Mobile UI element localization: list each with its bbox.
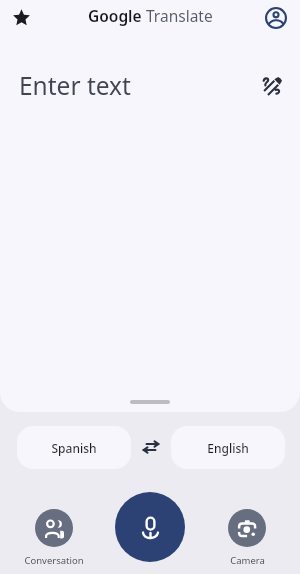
button[interactable]: Saved [5,1,37,33]
staticText: Enter text [19,69,131,102]
staticText: English [207,440,249,456]
staticText: Conversation [24,554,84,567]
button[interactable]: Enter text [0,65,300,105]
button[interactable]: Voice input [115,492,185,562]
staticText: Google [88,5,142,26]
button[interactable]: Account [260,2,292,34]
button[interactable]: Handwriting [256,70,288,102]
staticText: Translate [146,5,213,26]
button[interactable]: English [171,426,285,469]
button[interactable]: Conversation [14,509,94,574]
button[interactable]: Spanish [17,426,131,469]
staticText: Spanish [51,440,97,456]
button[interactable]: Camera [207,509,287,574]
staticText: Camera [230,554,265,567]
button[interactable]: Swap languages [135,431,167,463]
